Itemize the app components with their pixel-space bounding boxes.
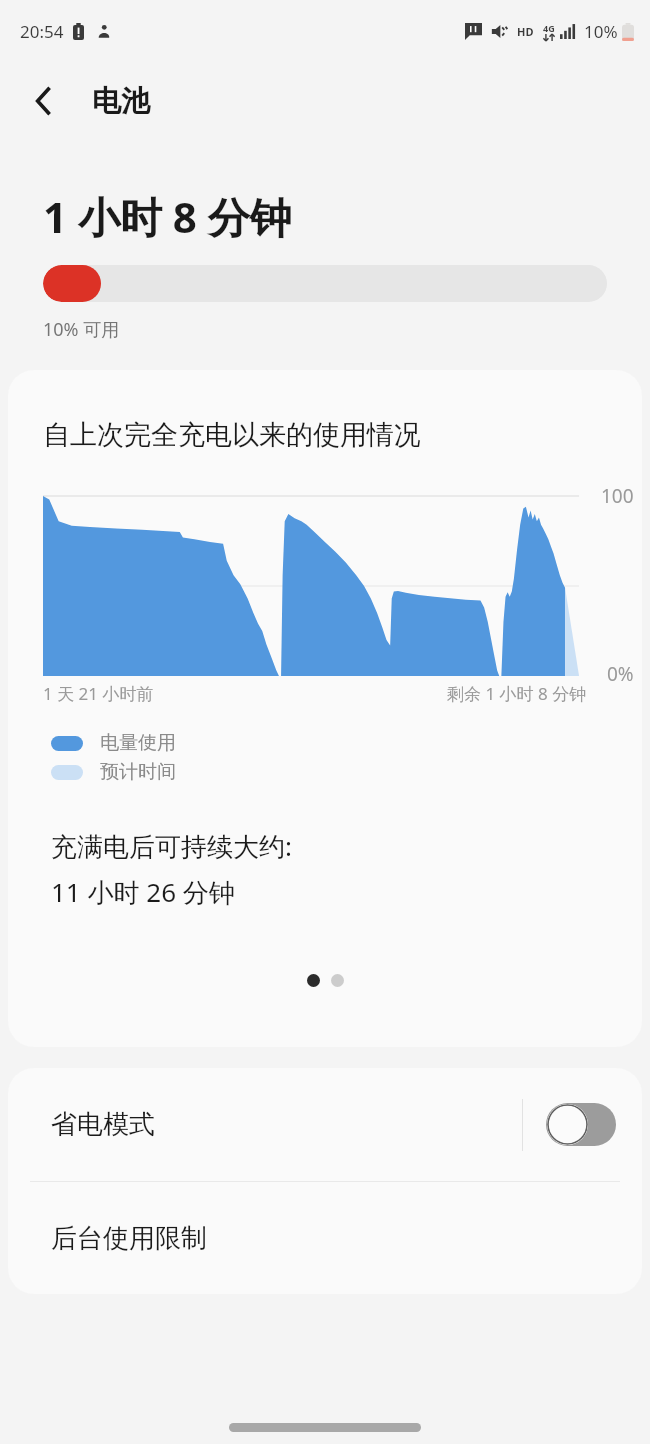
staticText: 电池 [92,83,150,120]
button[interactable]: 后台使用限制 [8,1182,642,1294]
staticText: 11 小时 26 分钟 [51,874,235,910]
staticText: 1 小时 8 分钟 [43,188,292,245]
staticText: 4G [543,22,555,34]
staticText: 剩余 1 小时 8 分钟 [447,682,587,705]
staticText: 电量使用 [100,731,176,755]
staticText: HD [517,24,534,39]
button[interactable]: Back [18,75,70,127]
button[interactable]: 省电模式 [8,1068,642,1181]
staticText: 充满电后可持续大约: [51,828,292,864]
staticText: 预计时间 [100,760,176,784]
staticText: 10% [584,20,618,43]
staticText: 10% 可用 [43,317,120,342]
staticText: 100 [601,483,634,509]
staticText: 0% [607,661,634,687]
button[interactable]: 省电模式 toggle [546,1103,616,1146]
staticText: 后台使用限制 [51,1222,207,1255]
staticText: 1 天 21 小时前 [43,682,154,705]
staticText: 自上次完全充电以来的使用情况 [43,418,421,452]
staticText: 20:54 [20,20,64,43]
staticText: 省电模式 [51,1108,155,1141]
